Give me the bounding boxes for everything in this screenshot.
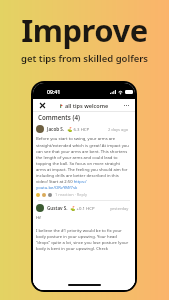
button[interactable]: Close (37, 100, 47, 110)
staticText: Comments (4) (38, 113, 80, 121)
staticText: Gustav S. (47, 205, 68, 211)
staticText: Jacob S. (47, 126, 65, 132)
staticText: Hi! I believe the #1 priority would be t… (36, 215, 129, 251)
staticText: all tips welcome (65, 102, 109, 109)
staticText: 1 reaction · Reply (55, 192, 88, 197)
staticText: Before you start to swing, your arms are… (36, 136, 129, 190)
staticText: 09:41 (47, 88, 61, 95)
staticText: ⛳ +0.1 HCP (70, 205, 95, 211)
staticText: Improve (0, 9, 169, 51)
button[interactable]: Jacob S. (36, 125, 129, 133)
button[interactable]: Gustav S. (36, 204, 129, 212)
button[interactable]: More options (121, 100, 131, 110)
staticText: yesterday (110, 206, 129, 211)
staticText: get tips from skilled golfers (0, 52, 169, 65)
staticText: ⛳ 6.3 HCP (67, 126, 90, 132)
staticText: 2 days ago (108, 127, 129, 132)
